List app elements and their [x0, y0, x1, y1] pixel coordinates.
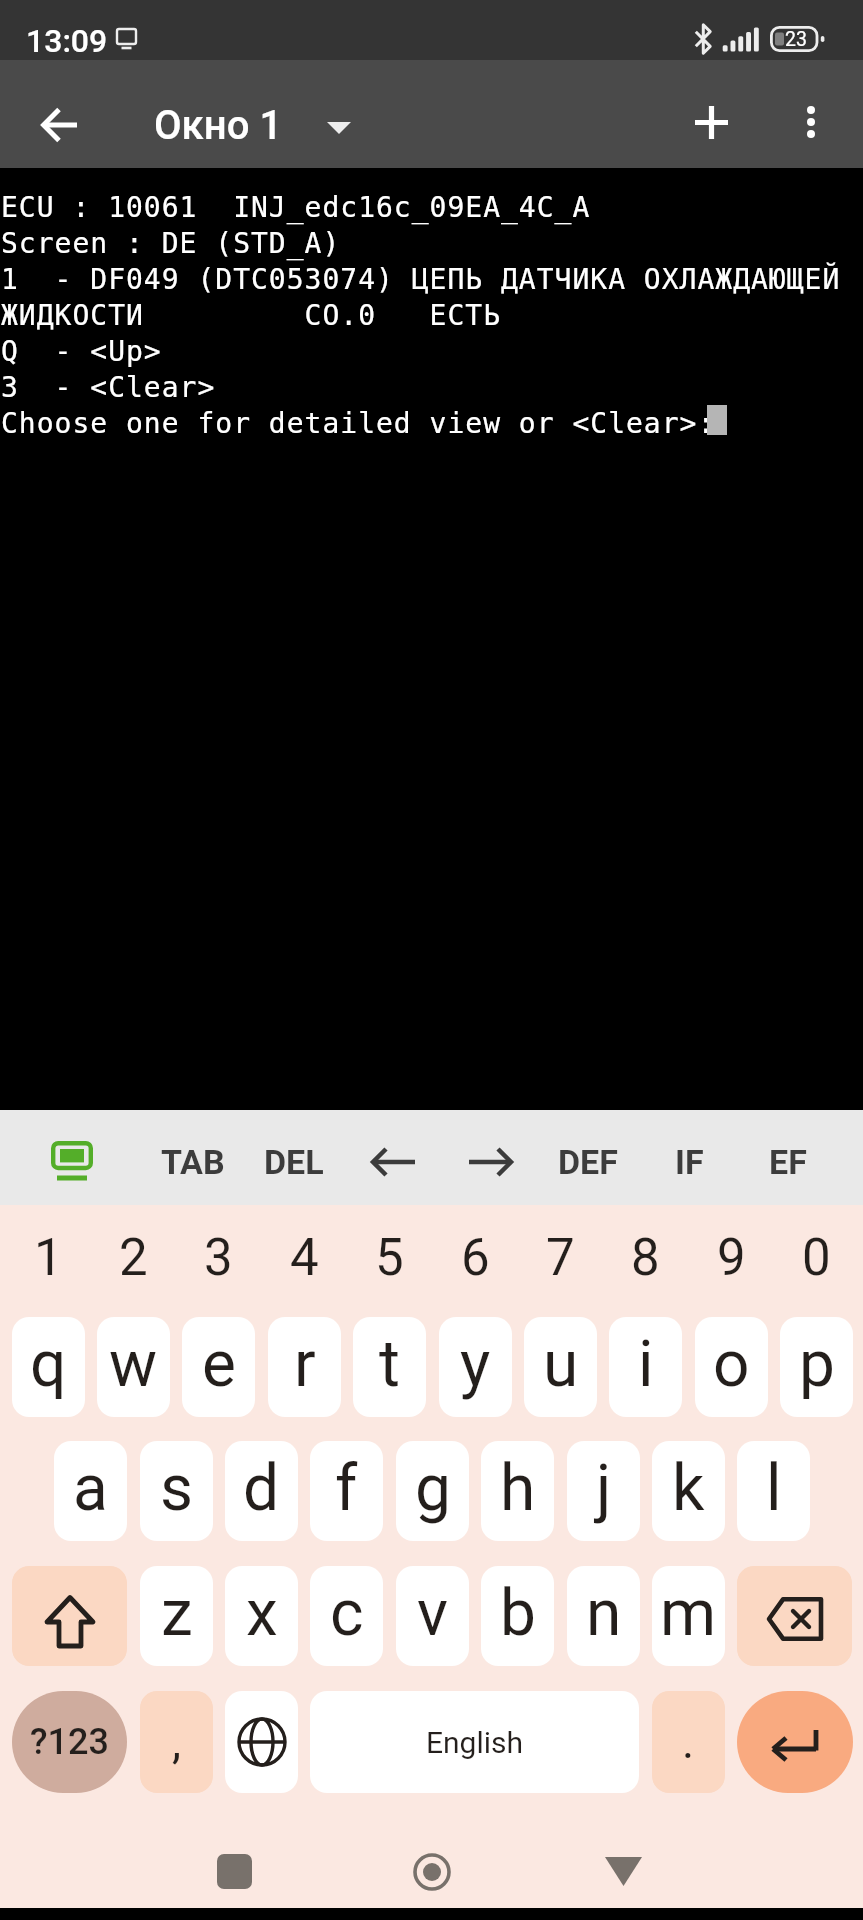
staticText: r [294, 1327, 316, 1402]
button[interactable] [588, 1836, 659, 1907]
staticText: c [330, 1576, 364, 1651]
button[interactable]: 6 [433, 1208, 518, 1308]
button[interactable]: 5 [347, 1208, 432, 1308]
staticText: e [202, 1327, 236, 1402]
staticText: 8 [631, 1228, 660, 1288]
button[interactable]: f [310, 1441, 383, 1541]
button[interactable]: 9 [689, 1208, 774, 1308]
staticText: n [586, 1576, 622, 1651]
button[interactable]: TAB [143, 1114, 243, 1209]
staticText: g [415, 1451, 451, 1526]
button[interactable]: i [609, 1317, 682, 1417]
staticText: y [460, 1327, 491, 1402]
button[interactable] [199, 1836, 270, 1907]
button[interactable]: d [225, 1441, 298, 1541]
button[interactable]: 8 [603, 1208, 688, 1308]
button[interactable] [396, 1836, 467, 1907]
button[interactable]: a [54, 1441, 127, 1541]
staticText: j [596, 1451, 612, 1526]
button[interactable]: , [140, 1691, 213, 1793]
staticText: o [713, 1327, 750, 1402]
staticText: 5 [375, 1228, 404, 1288]
button[interactable] [30, 1119, 114, 1203]
staticText: w [109, 1327, 158, 1402]
button[interactable]: 0 [774, 1208, 859, 1308]
staticText: s [160, 1451, 194, 1526]
staticText: 6 [461, 1228, 490, 1288]
button[interactable]: 1 [6, 1208, 91, 1308]
button[interactable]: v [396, 1566, 469, 1666]
button[interactable]: w [97, 1317, 170, 1417]
button[interactable]: 2 [91, 1208, 176, 1308]
staticText: u [543, 1327, 579, 1402]
button[interactable]: q [12, 1317, 85, 1417]
button[interactable] [12, 1566, 127, 1666]
staticText: 3 [204, 1228, 233, 1288]
staticText: v [417, 1576, 448, 1651]
staticText: 2 [119, 1228, 148, 1288]
staticText: b [500, 1576, 536, 1651]
button[interactable] [225, 1691, 298, 1793]
button[interactable]: DEF [538, 1114, 638, 1209]
button[interactable] [24, 89, 96, 161]
staticText: 13:09 [26, 22, 108, 60]
button[interactable]: 3 [176, 1208, 261, 1308]
button[interactable]: u [524, 1317, 597, 1417]
button[interactable]: 4 [262, 1208, 347, 1308]
button[interactable] [675, 86, 747, 158]
staticText: 4 [290, 1228, 319, 1288]
button[interactable]: DEL [244, 1114, 344, 1209]
button[interactable] [441, 1114, 541, 1209]
button[interactable]: . [652, 1691, 725, 1793]
staticText: q [30, 1327, 67, 1402]
staticText: ECU : 10061 INJ_edc16c_09EA_4C_A Screen … [1, 191, 841, 439]
button[interactable]: r [268, 1317, 341, 1417]
button[interactable]: 7 [518, 1208, 603, 1308]
staticText: 7 [546, 1228, 575, 1288]
button[interactable]: c [310, 1566, 383, 1666]
staticText: . [682, 1715, 695, 1769]
staticText: x [246, 1576, 278, 1651]
staticText: TAB [161, 1142, 225, 1182]
button[interactable]: m [652, 1566, 725, 1666]
button[interactable]: x [225, 1566, 298, 1666]
button[interactable]: b [481, 1566, 554, 1666]
button[interactable]: g [396, 1441, 469, 1541]
button[interactable]: h [481, 1441, 554, 1541]
button[interactable]: t [353, 1317, 426, 1417]
button[interactable]: IF [639, 1114, 739, 1209]
button[interactable]: s [140, 1441, 213, 1541]
button[interactable]: Окно 1 [154, 71, 351, 179]
staticText: z [161, 1576, 193, 1651]
staticText: a [73, 1451, 108, 1526]
staticText: m [660, 1576, 717, 1651]
staticText: h [500, 1451, 536, 1526]
button[interactable]: j [567, 1441, 640, 1541]
staticText: 9 [717, 1228, 746, 1288]
staticText: IF [675, 1142, 704, 1182]
button[interactable]: l [737, 1441, 810, 1541]
button[interactable]: o [695, 1317, 768, 1417]
staticText: Окно 1 [154, 102, 283, 149]
staticText: ?123 [30, 1721, 109, 1763]
staticText: DEF [558, 1142, 618, 1182]
button[interactable] [737, 1691, 853, 1793]
button[interactable] [737, 1566, 852, 1666]
button[interactable]: EF [738, 1114, 838, 1209]
staticText: d [243, 1451, 280, 1526]
button[interactable]: p [780, 1317, 853, 1417]
staticText: DEL [264, 1142, 324, 1182]
button[interactable]: k [652, 1441, 725, 1541]
button[interactable]: English [310, 1691, 639, 1793]
button[interactable]: ?123 [12, 1691, 127, 1793]
button[interactable]: n [567, 1566, 640, 1666]
staticText: 1 [34, 1228, 63, 1288]
staticText: i [638, 1327, 654, 1402]
staticText: t [379, 1327, 400, 1402]
button[interactable] [775, 86, 847, 158]
button[interactable] [343, 1114, 443, 1209]
staticText: p [799, 1327, 835, 1402]
button[interactable]: z [140, 1566, 213, 1666]
button[interactable]: y [439, 1317, 512, 1417]
button[interactable]: e [182, 1317, 255, 1417]
